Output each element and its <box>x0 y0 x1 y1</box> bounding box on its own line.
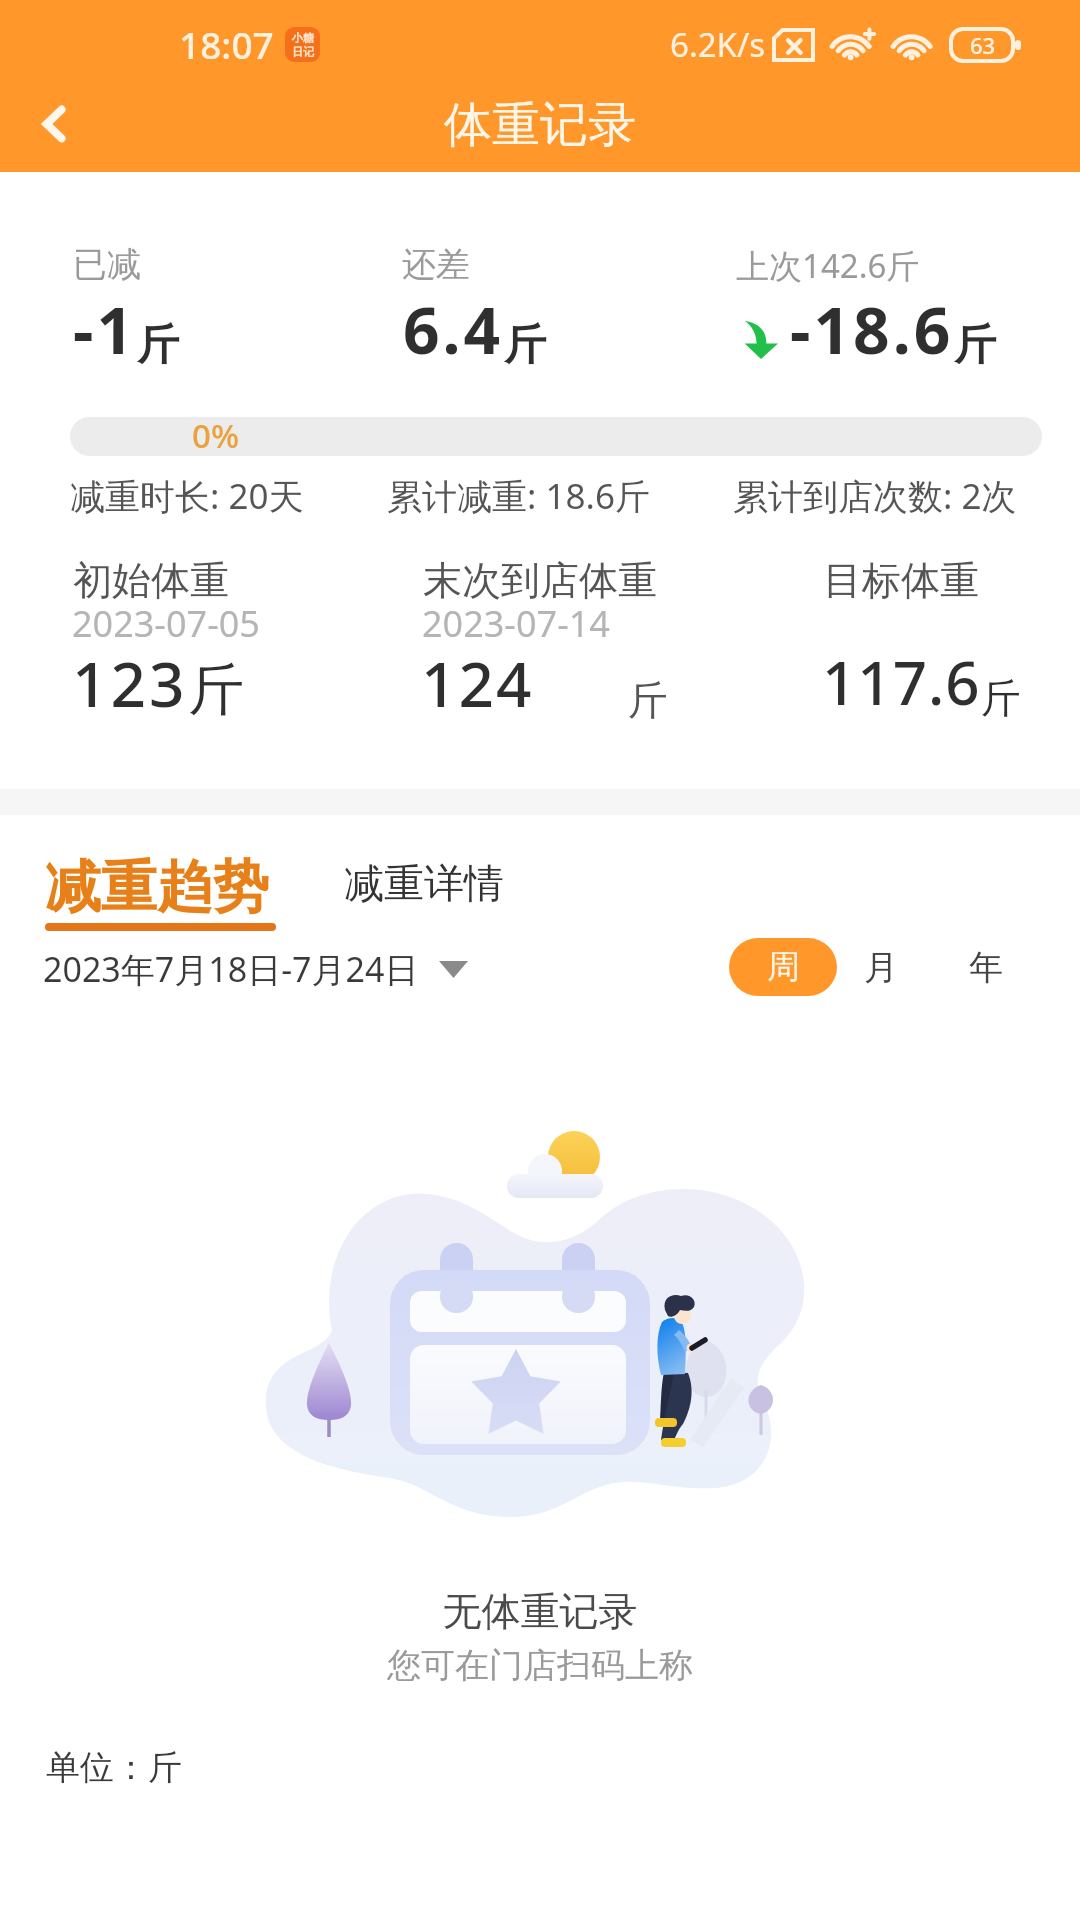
staticText: 123 <box>72 641 188 725</box>
staticText: 斤 <box>137 319 179 372</box>
staticText: 上次142.6斤 <box>736 243 920 288</box>
staticText: 斤 <box>954 319 996 372</box>
button[interactable]: 周 <box>729 938 837 996</box>
staticText: 还差 <box>402 243 470 286</box>
staticText: 初始体重 <box>73 556 229 605</box>
staticText: 2023-07-14 <box>422 599 610 648</box>
staticText: 2023-07-05 <box>72 599 260 648</box>
staticText: 月 <box>864 946 898 989</box>
staticText: 减重详情 <box>344 858 504 908</box>
staticText: -1 <box>73 286 137 373</box>
staticText: 小糖 <box>292 31 314 45</box>
staticText: -18.6 <box>790 286 954 373</box>
staticText: 单位：斤 <box>46 1746 182 1789</box>
staticText: 斤 <box>188 655 244 726</box>
staticText: 斤 <box>628 675 668 725</box>
staticText: 末次到店体重 <box>423 556 657 605</box>
staticText: 已减 <box>73 243 141 286</box>
staticText: 6.4 <box>403 286 504 373</box>
staticText: 周 <box>767 946 800 988</box>
staticText: 斤 <box>981 673 1021 723</box>
button[interactable]: 年 <box>958 938 1014 996</box>
staticText: 累计减重: 18.6斤 <box>387 472 650 520</box>
staticText: 124 <box>421 641 534 725</box>
button[interactable]: Back <box>0 82 110 166</box>
staticText: 年 <box>969 946 1003 989</box>
staticText: 18:07 <box>179 19 274 69</box>
staticText: 0% <box>192 417 239 452</box>
staticText: 减重趋势 <box>45 852 269 923</box>
staticText: 您可在门店扫码上称 <box>0 1644 1080 1687</box>
staticText: 6.2K/s <box>670 22 766 67</box>
staticText: 减重时长: 20天 <box>70 472 304 520</box>
staticText: 斤 <box>504 319 546 372</box>
staticText: 日记 <box>292 45 314 59</box>
staticText: 目标体重 <box>823 556 979 605</box>
staticText: 无体重记录 <box>0 1587 1080 1636</box>
button[interactable]: 2023年7月18日-7月24日 <box>43 946 468 992</box>
button[interactable]: 减重趋势 <box>45 852 276 931</box>
staticText: 2023年7月18日-7月24日 <box>43 946 419 992</box>
staticText: 体重记录 <box>444 95 636 155</box>
staticText: 63 <box>970 30 996 60</box>
button[interactable]: 月 <box>853 938 909 996</box>
staticText: 累计到店次数: 2次 <box>733 472 1017 520</box>
staticText: 117.6 <box>822 641 981 723</box>
button[interactable]: 减重详情 <box>344 858 504 908</box>
